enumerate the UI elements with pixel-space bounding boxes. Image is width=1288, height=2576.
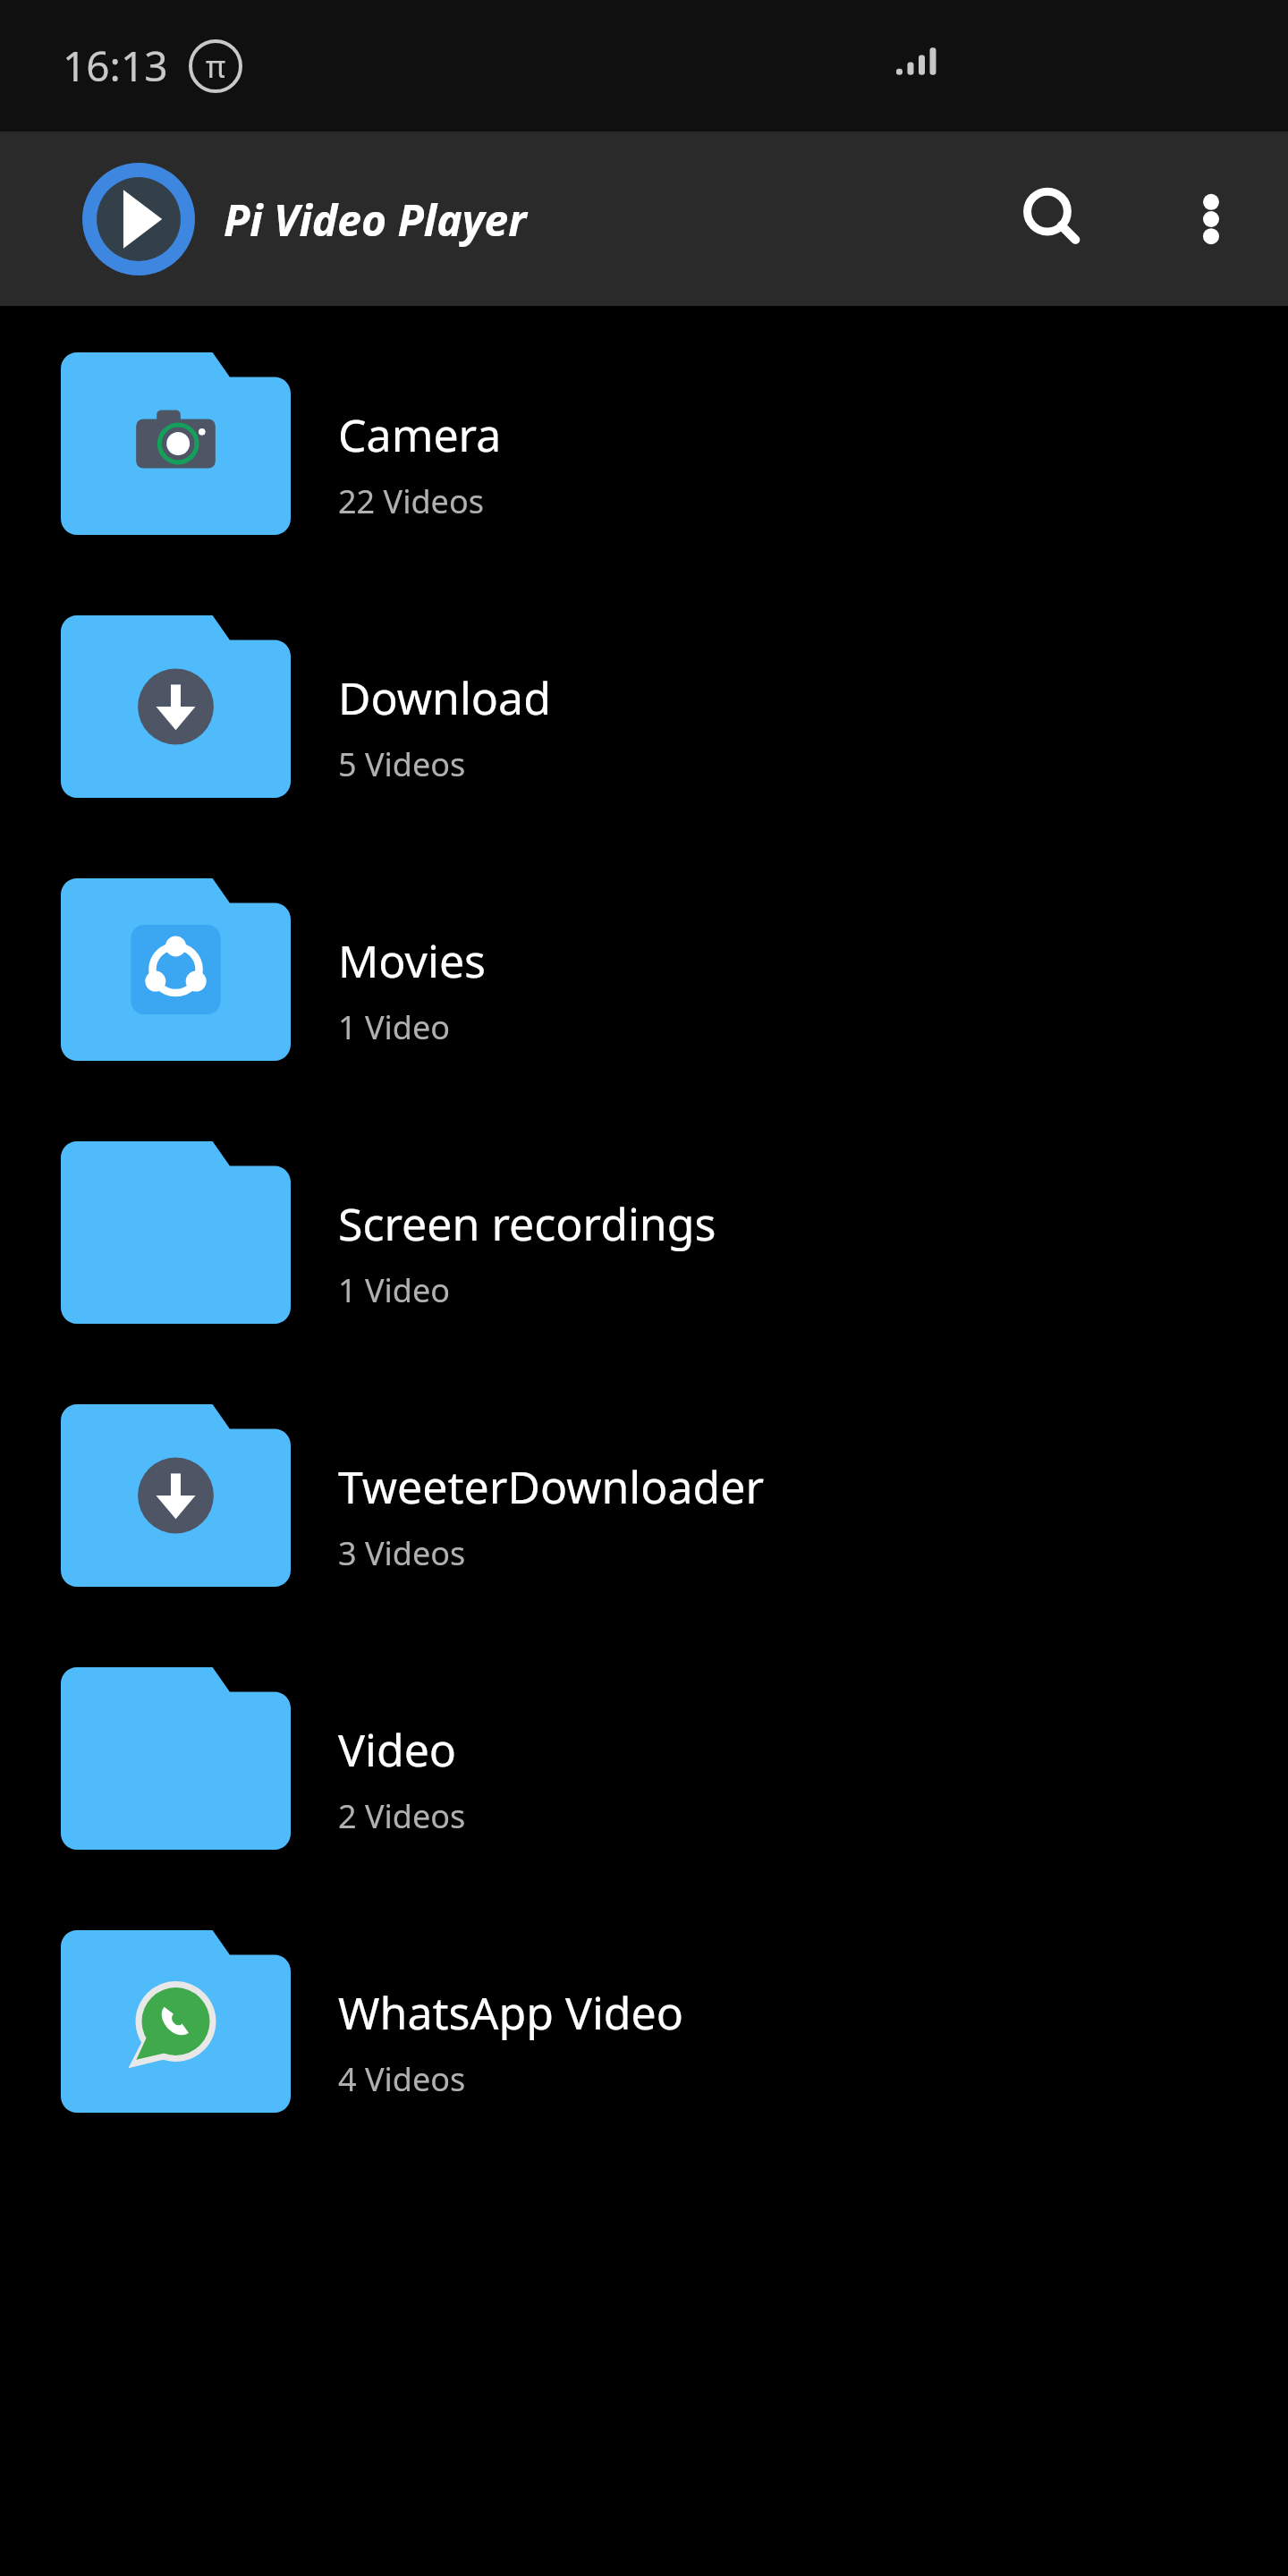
- staticText: Screen recordings: [338, 1193, 716, 1254]
- button[interactable]: Movies: [0, 875, 1288, 1138]
- button[interactable]: Video: [0, 1664, 1288, 1927]
- button[interactable]: Camera: [0, 349, 1288, 612]
- staticText: 22 Videos: [338, 479, 484, 523]
- staticText: 2 Videos: [338, 1794, 466, 1838]
- staticText: Camera: [338, 404, 502, 465]
- staticText: Movies: [338, 930, 487, 991]
- staticText: 4 Videos: [338, 2057, 466, 2101]
- button[interactable]: More options: [1157, 165, 1265, 273]
- staticText: 5 Videos: [338, 742, 466, 786]
- staticText: Pi Video Player: [224, 191, 527, 249]
- staticText: 16:13: [63, 38, 168, 94]
- staticText: TweeterDownloader: [338, 1456, 765, 1517]
- button[interactable]: Download: [0, 612, 1288, 875]
- button[interactable]: Screen recordings: [0, 1138, 1288, 1401]
- staticText: 3 Videos: [338, 1531, 466, 1575]
- button[interactable]: Search: [1000, 165, 1107, 273]
- staticText: Video: [338, 1719, 457, 1780]
- staticText: WhatsApp Video: [338, 1982, 683, 2043]
- staticText: 1 Video: [338, 1268, 451, 1312]
- staticText: Download: [338, 667, 551, 728]
- button[interactable]: TweeterDownloader: [0, 1401, 1288, 1664]
- staticText: π: [206, 46, 226, 87]
- button[interactable]: WhatsApp Video: [0, 1927, 1288, 2190]
- staticText: 1 Video: [338, 1005, 451, 1049]
